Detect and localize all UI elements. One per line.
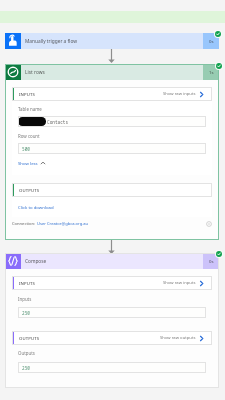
staticText: Row count	[18, 133, 40, 139]
staticText: 1s	[209, 69, 214, 75]
staticText: Inputs	[18, 296, 32, 302]
staticText: 250	[22, 365, 30, 371]
staticText: Show raw outputs	[160, 335, 196, 341]
other: Succeeded	[216, 63, 222, 69]
staticText: Show raw inputs	[163, 280, 196, 286]
button[interactable]: Compose	[5, 253, 219, 269]
staticText: INPUTS	[19, 280, 35, 286]
staticText: List rows	[25, 69, 45, 76]
staticText: Manually trigger a flow	[25, 38, 78, 45]
other: Succeeded	[215, 31, 221, 37]
staticText: Table name	[18, 106, 42, 112]
staticText: Show raw inputs	[163, 91, 196, 97]
button[interactable]: OUTPUTS	[12, 331, 212, 345]
staticText: INPUTS	[19, 91, 35, 97]
staticText: 500	[22, 146, 30, 152]
staticText: Show less	[18, 160, 38, 166]
other: Connection info	[206, 221, 212, 227]
staticText: Contacts	[47, 119, 69, 125]
button[interactable]: OUTPUTS	[12, 183, 212, 197]
button[interactable]: Show less	[18, 160, 46, 166]
staticText: 0s	[209, 258, 214, 264]
staticText: Connection:	[12, 221, 37, 227]
staticText: OUTPUTS	[19, 335, 40, 341]
staticText: Compose	[25, 258, 47, 265]
button[interactable]: INPUTS	[12, 276, 212, 290]
button[interactable]: Manually trigger a flow	[5, 33, 219, 49]
other: Succeeded	[216, 251, 222, 257]
staticText: 0s	[209, 38, 214, 44]
button[interactable]: List rows	[5, 64, 219, 80]
staticText: Outputs	[18, 350, 35, 356]
button[interactable]: User Creator@gbca.org.au	[37, 221, 89, 227]
staticText: OUTPUTS	[19, 187, 40, 193]
button[interactable]: Click to download	[18, 204, 54, 210]
button[interactable]: INPUTS	[12, 87, 212, 101]
staticText: 250	[22, 310, 30, 316]
